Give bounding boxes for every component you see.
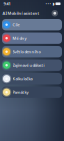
button[interactable]: Památky <box>2 86 62 98</box>
staticText: 9:41 <box>3 1 10 6</box>
button[interactable]: Zajímavé události <box>2 59 62 71</box>
staticText: Kalkulačka <box>13 76 33 81</box>
button[interactable]: Cíle <box>2 19 62 30</box>
staticText: AI Mobilní asistent <box>3 11 40 16</box>
button[interactable]: Kalkulačka <box>2 73 62 84</box>
staticText: ◗ <box>52 1 54 6</box>
staticText: ••• <box>45 1 51 6</box>
button[interactable]: Profile <box>52 10 58 16</box>
staticText: Cíle <box>13 22 20 27</box>
staticText: Světlo denního <box>13 49 41 54</box>
button[interactable]: Mé dny <box>2 32 62 44</box>
staticText: Mé dny <box>13 35 27 41</box>
staticText: Zajímavé události <box>13 62 45 68</box>
staticText: Památky <box>13 89 29 95</box>
button[interactable]: Světlo denního <box>2 46 62 57</box>
